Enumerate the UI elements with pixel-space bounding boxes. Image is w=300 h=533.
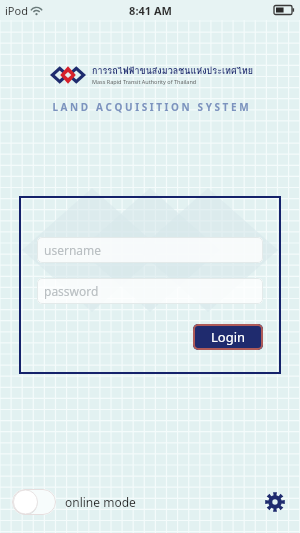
staticText: iPod	[5, 3, 28, 18]
staticText: Mass Rapid Transit Authority of Thailand	[92, 78, 197, 85]
staticText: 8:41 AM	[129, 3, 172, 18]
staticText: Login	[211, 328, 246, 346]
staticText: password	[44, 283, 99, 299]
staticText: การรถไฟฟ้าขนส่งมวลชนแห่งประเทศไทย	[92, 64, 253, 78]
button[interactable]: Settings	[262, 489, 288, 515]
button[interactable]: password	[37, 278, 263, 304]
staticText: username	[44, 242, 102, 258]
button[interactable]: online mode toggle	[12, 489, 56, 515]
staticText: L A N D A C Q U I S I T I O N S Y S T E …	[52, 100, 249, 114]
button[interactable]: username	[37, 237, 263, 263]
button[interactable]: Login	[193, 324, 263, 350]
staticText: online mode	[65, 494, 136, 510]
